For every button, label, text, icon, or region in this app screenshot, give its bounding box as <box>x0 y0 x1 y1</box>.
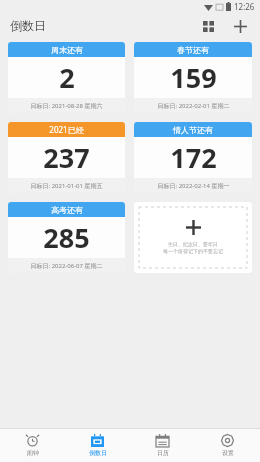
button[interactable]: 周末还有 <box>8 42 125 113</box>
staticText: 目标日: 2021-08-28 星期六 <box>30 102 103 110</box>
staticText: 高考还有 <box>51 205 83 215</box>
staticText: 目标日: 2022-06-07 星期二 <box>30 262 103 270</box>
staticText: 周末还有 <box>51 45 83 55</box>
staticText: 172 <box>170 139 217 176</box>
staticText: 情人节还有 <box>173 125 213 135</box>
button[interactable]: 倒数日 <box>65 429 130 462</box>
button[interactable]: 2021已经 <box>8 122 125 193</box>
staticText: 春节还有 <box>177 45 209 55</box>
staticText: 倒数日 <box>89 449 107 457</box>
button[interactable]: 闹钟 <box>0 429 65 462</box>
staticText: 目标日: 2022-02-01 星期二 <box>157 102 230 110</box>
staticText: 生日、纪念日、要年日 每一个值得记下的不要忘记 <box>163 241 223 255</box>
staticText: 285 <box>43 219 90 256</box>
button[interactable]: 高考还有 <box>8 202 125 273</box>
button[interactable]: Grid view <box>196 14 220 38</box>
staticText: 倒数日 <box>10 18 46 33</box>
button[interactable]: Add countdown <box>228 14 252 38</box>
button[interactable]: 日历 <box>130 429 195 462</box>
staticText: 目标日: 2021-01-01 星期五 <box>30 182 103 190</box>
staticText: 闹钟 <box>27 449 39 457</box>
button[interactable]: 情人节还有 <box>134 122 252 193</box>
button[interactable]: 设置 <box>195 429 260 462</box>
staticText: 2021已经 <box>49 124 84 135</box>
staticText: 237 <box>43 139 90 176</box>
staticText: 目标日: 2022-02-14 星期一 <box>157 182 230 190</box>
staticText: 12:26 <box>234 1 255 12</box>
button[interactable]: Add new countdown <box>134 202 252 273</box>
staticText: 2 <box>59 59 75 96</box>
staticText: 设置 <box>222 449 234 457</box>
staticText: 159 <box>170 59 217 96</box>
staticText: 日历 <box>157 449 169 457</box>
button[interactable]: 春节还有 <box>134 42 252 113</box>
